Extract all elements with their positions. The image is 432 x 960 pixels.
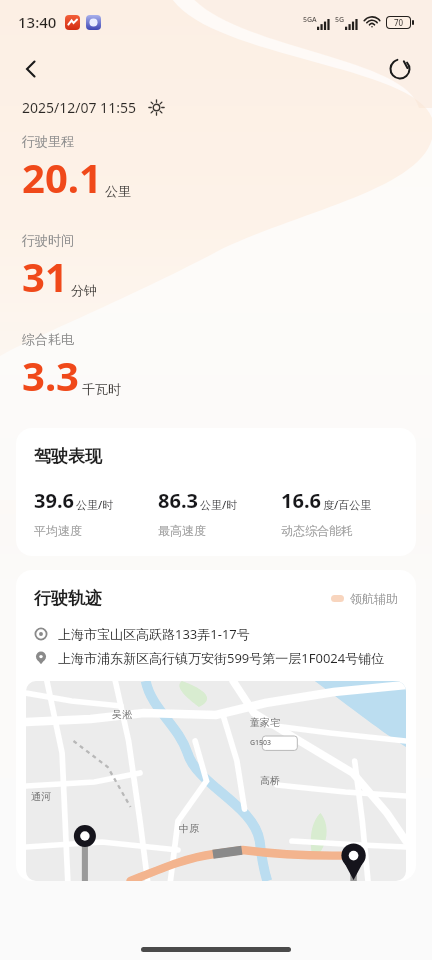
staticText: 行驶时间 [22, 232, 74, 248]
staticText: 动态综合能耗 [281, 523, 353, 538]
button[interactable]: 驾驶表现 [16, 428, 416, 556]
staticText: 公里/时 [76, 497, 114, 512]
staticText: 13:40 [18, 12, 57, 32]
staticText: 领航辅助 [350, 591, 398, 606]
staticText: 5G [335, 15, 345, 25]
staticText: 86.3 [158, 487, 198, 514]
staticText: 吴淞 [112, 708, 132, 721]
staticText: 综合耗电 [22, 331, 74, 347]
staticText: 行驶轨迹 [34, 588, 102, 609]
staticText: 驾驶表现 [34, 446, 102, 467]
staticText: 70 [394, 17, 404, 28]
staticText: 上海市宝山区高跃路133弄1-17号 [58, 625, 250, 643]
staticText: 上海市浦东新区高行镇万安街599号第一层1F0024号铺位 [58, 649, 385, 667]
staticText: 31 [22, 249, 68, 303]
staticText: 39.6 [34, 487, 74, 514]
staticText: 分钟 [71, 282, 97, 298]
staticText: G1503 [250, 738, 272, 748]
staticText: 3.3 [22, 348, 79, 402]
staticText: 度/百公里 [323, 497, 372, 512]
button[interactable]: Refresh [372, 49, 412, 89]
staticText: 20.1 [22, 150, 102, 204]
staticText: 2025/12/07 11:55 [22, 98, 136, 117]
button[interactable]: 行驶轨迹 [16, 570, 416, 881]
staticText: 5GA [303, 15, 317, 25]
staticText: 行驶里程 [22, 133, 74, 149]
staticText: 千瓦时 [82, 381, 121, 397]
staticText: 平均速度 [34, 523, 82, 538]
staticText: 最高速度 [158, 523, 206, 538]
staticText: 16.6 [281, 487, 321, 514]
button[interactable]: Back [20, 49, 60, 89]
staticText: 通河 [31, 790, 51, 803]
staticText: 公里/时 [200, 497, 238, 512]
staticText: 童家宅 [250, 716, 280, 729]
staticText: 公里 [105, 183, 131, 199]
staticText: 中原 [179, 822, 199, 835]
staticText: 高桥 [260, 774, 280, 787]
